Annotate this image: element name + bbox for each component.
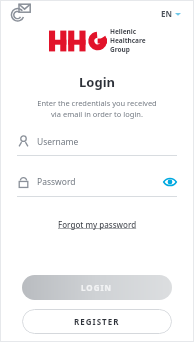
staticText: Login bbox=[0, 73, 194, 91]
staticText: Hellenic bbox=[110, 27, 137, 36]
staticText: Healthcare bbox=[110, 36, 146, 45]
button[interactable]: Forgot my password bbox=[50, 215, 145, 234]
staticText: Password bbox=[37, 176, 76, 188]
button[interactable]: EN bbox=[159, 6, 183, 21]
button[interactable]: Contact us bbox=[11, 3, 31, 23]
staticText: Forgot my password bbox=[58, 219, 137, 230]
button[interactable]: REGISTER bbox=[22, 309, 172, 334]
button[interactable]: Password bbox=[17, 175, 177, 197]
button[interactable]: LOGIN bbox=[22, 275, 172, 300]
staticText: REGISTER bbox=[74, 316, 120, 327]
staticText: EN bbox=[161, 8, 172, 19]
button[interactable]: Username bbox=[17, 135, 177, 156]
staticText: LOGIN bbox=[81, 282, 113, 293]
staticText: Username bbox=[37, 136, 79, 148]
button[interactable]: Show password bbox=[163, 175, 177, 189]
staticText: Enter the credentials you received via e… bbox=[16, 98, 178, 119]
staticText: Group bbox=[110, 45, 130, 54]
